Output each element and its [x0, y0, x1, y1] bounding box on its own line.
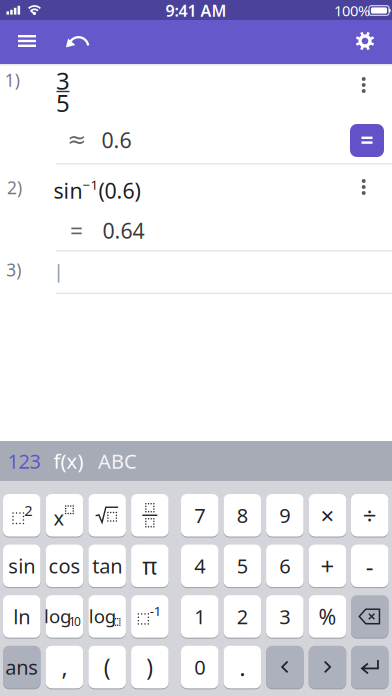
staticText: 6	[279, 553, 290, 579]
button[interactable]: 3	[266, 595, 304, 638]
staticText: ln	[13, 603, 30, 630]
button[interactable]: 5	[224, 545, 261, 587]
staticText: 1)	[5, 68, 20, 91]
button[interactable]: %	[309, 595, 346, 638]
button[interactable]: 6	[266, 545, 304, 587]
button[interactable]: 4	[181, 545, 218, 587]
staticText: 2	[237, 603, 248, 630]
staticText: 5	[237, 553, 248, 579]
button[interactable]: Power	[46, 494, 83, 536]
staticText: 2	[24, 500, 32, 520]
button[interactable]: ln	[3, 595, 40, 638]
staticText: sin	[8, 553, 35, 579]
button[interactable]: tan	[88, 545, 126, 587]
staticText: 3	[279, 603, 290, 630]
staticText: tan	[92, 553, 122, 579]
staticText: ans	[5, 654, 38, 680]
staticText: +	[320, 550, 334, 582]
staticText: ,	[61, 652, 67, 682]
button[interactable]: ABC	[94, 441, 140, 481]
staticText: (0.6)	[98, 176, 140, 205]
staticText: (	[104, 652, 111, 682]
button[interactable]: Square root	[88, 494, 126, 536]
staticText: 4	[194, 553, 205, 579]
button[interactable]: Move cursor left	[266, 646, 304, 688]
staticText: log	[44, 604, 71, 628]
button[interactable]: 7	[181, 494, 218, 536]
button[interactable]: ans	[3, 646, 40, 688]
button[interactable]: Undo	[57, 20, 97, 64]
staticText: x	[53, 504, 64, 531]
staticText: 0.6	[101, 126, 131, 154]
staticText: 1	[69, 613, 76, 629]
staticText: ≈	[67, 127, 86, 152]
staticText: 9:41 AM	[165, 0, 226, 21]
staticText: ×	[320, 499, 334, 531]
button[interactable]: Return	[351, 646, 388, 688]
button[interactable]: Row 1: 3 over 5	[0, 66, 392, 120]
staticText: 7	[194, 502, 205, 529]
button[interactable]: ,	[46, 646, 83, 688]
button[interactable]: f(x)	[48, 441, 88, 481]
button[interactable]: ×	[309, 494, 346, 536]
staticText: %	[318, 602, 336, 631]
button[interactable]: More options	[346, 169, 382, 205]
staticText: .	[239, 651, 245, 683]
staticText: =	[70, 215, 83, 245]
button[interactable]: cos	[46, 545, 83, 587]
staticText: 0	[74, 613, 81, 629]
button[interactable]: 2	[224, 595, 261, 638]
staticText: log	[89, 604, 116, 628]
button[interactable]: Row 2: inverse sine of 0.6	[0, 164, 392, 213]
button[interactable]: Delete	[351, 595, 388, 638]
staticText: 100%	[334, 1, 370, 20]
button[interactable]: 123	[2, 441, 46, 481]
button[interactable]: -	[351, 545, 388, 587]
staticText: ÷	[363, 499, 377, 531]
button[interactable]: More options	[346, 67, 382, 103]
button[interactable]: 8	[224, 494, 261, 536]
button[interactable]: 1	[181, 595, 218, 638]
button[interactable]: Square	[3, 494, 40, 536]
button[interactable]: Log base 10	[46, 595, 83, 638]
staticText: 0.64	[102, 216, 144, 245]
staticText: 0	[194, 654, 205, 680]
staticText: −1	[82, 176, 98, 193]
staticText: 1	[194, 603, 205, 630]
staticText: -1	[150, 602, 162, 620]
staticText: -	[366, 550, 374, 582]
button[interactable]: (	[88, 646, 126, 688]
button[interactable]: .	[224, 646, 261, 688]
staticText: )	[146, 652, 153, 682]
button[interactable]: π	[131, 545, 169, 587]
staticText: 5	[56, 87, 70, 119]
button[interactable]: Row 3: empty input	[0, 251, 392, 294]
staticText: 123	[7, 448, 40, 474]
button[interactable]: Move cursor right	[309, 646, 346, 688]
button[interactable]: Menu	[7, 19, 47, 63]
staticText: 2)	[7, 176, 22, 199]
button[interactable]: Log	[88, 595, 126, 638]
staticText: 3	[56, 65, 70, 96]
staticText: 3)	[6, 258, 21, 281]
staticText: 9	[279, 502, 290, 529]
button[interactable]: Evaluate	[350, 124, 384, 157]
staticText: ABC	[98, 448, 137, 474]
staticText: f(x)	[53, 448, 83, 474]
staticText: sin	[53, 176, 82, 205]
button[interactable]: 9	[266, 494, 304, 536]
staticText: cos	[48, 553, 80, 579]
button[interactable]: ÷	[351, 494, 388, 536]
button[interactable]: )	[131, 646, 169, 688]
button[interactable]: Inverse	[131, 595, 169, 638]
button[interactable]: +	[309, 545, 346, 587]
button[interactable]: Fraction	[131, 494, 169, 536]
button[interactable]: Settings	[343, 19, 387, 63]
staticText: π	[142, 551, 157, 581]
button[interactable]: sin	[3, 545, 40, 587]
staticText: 8	[237, 502, 248, 529]
button[interactable]: 0	[181, 646, 218, 688]
